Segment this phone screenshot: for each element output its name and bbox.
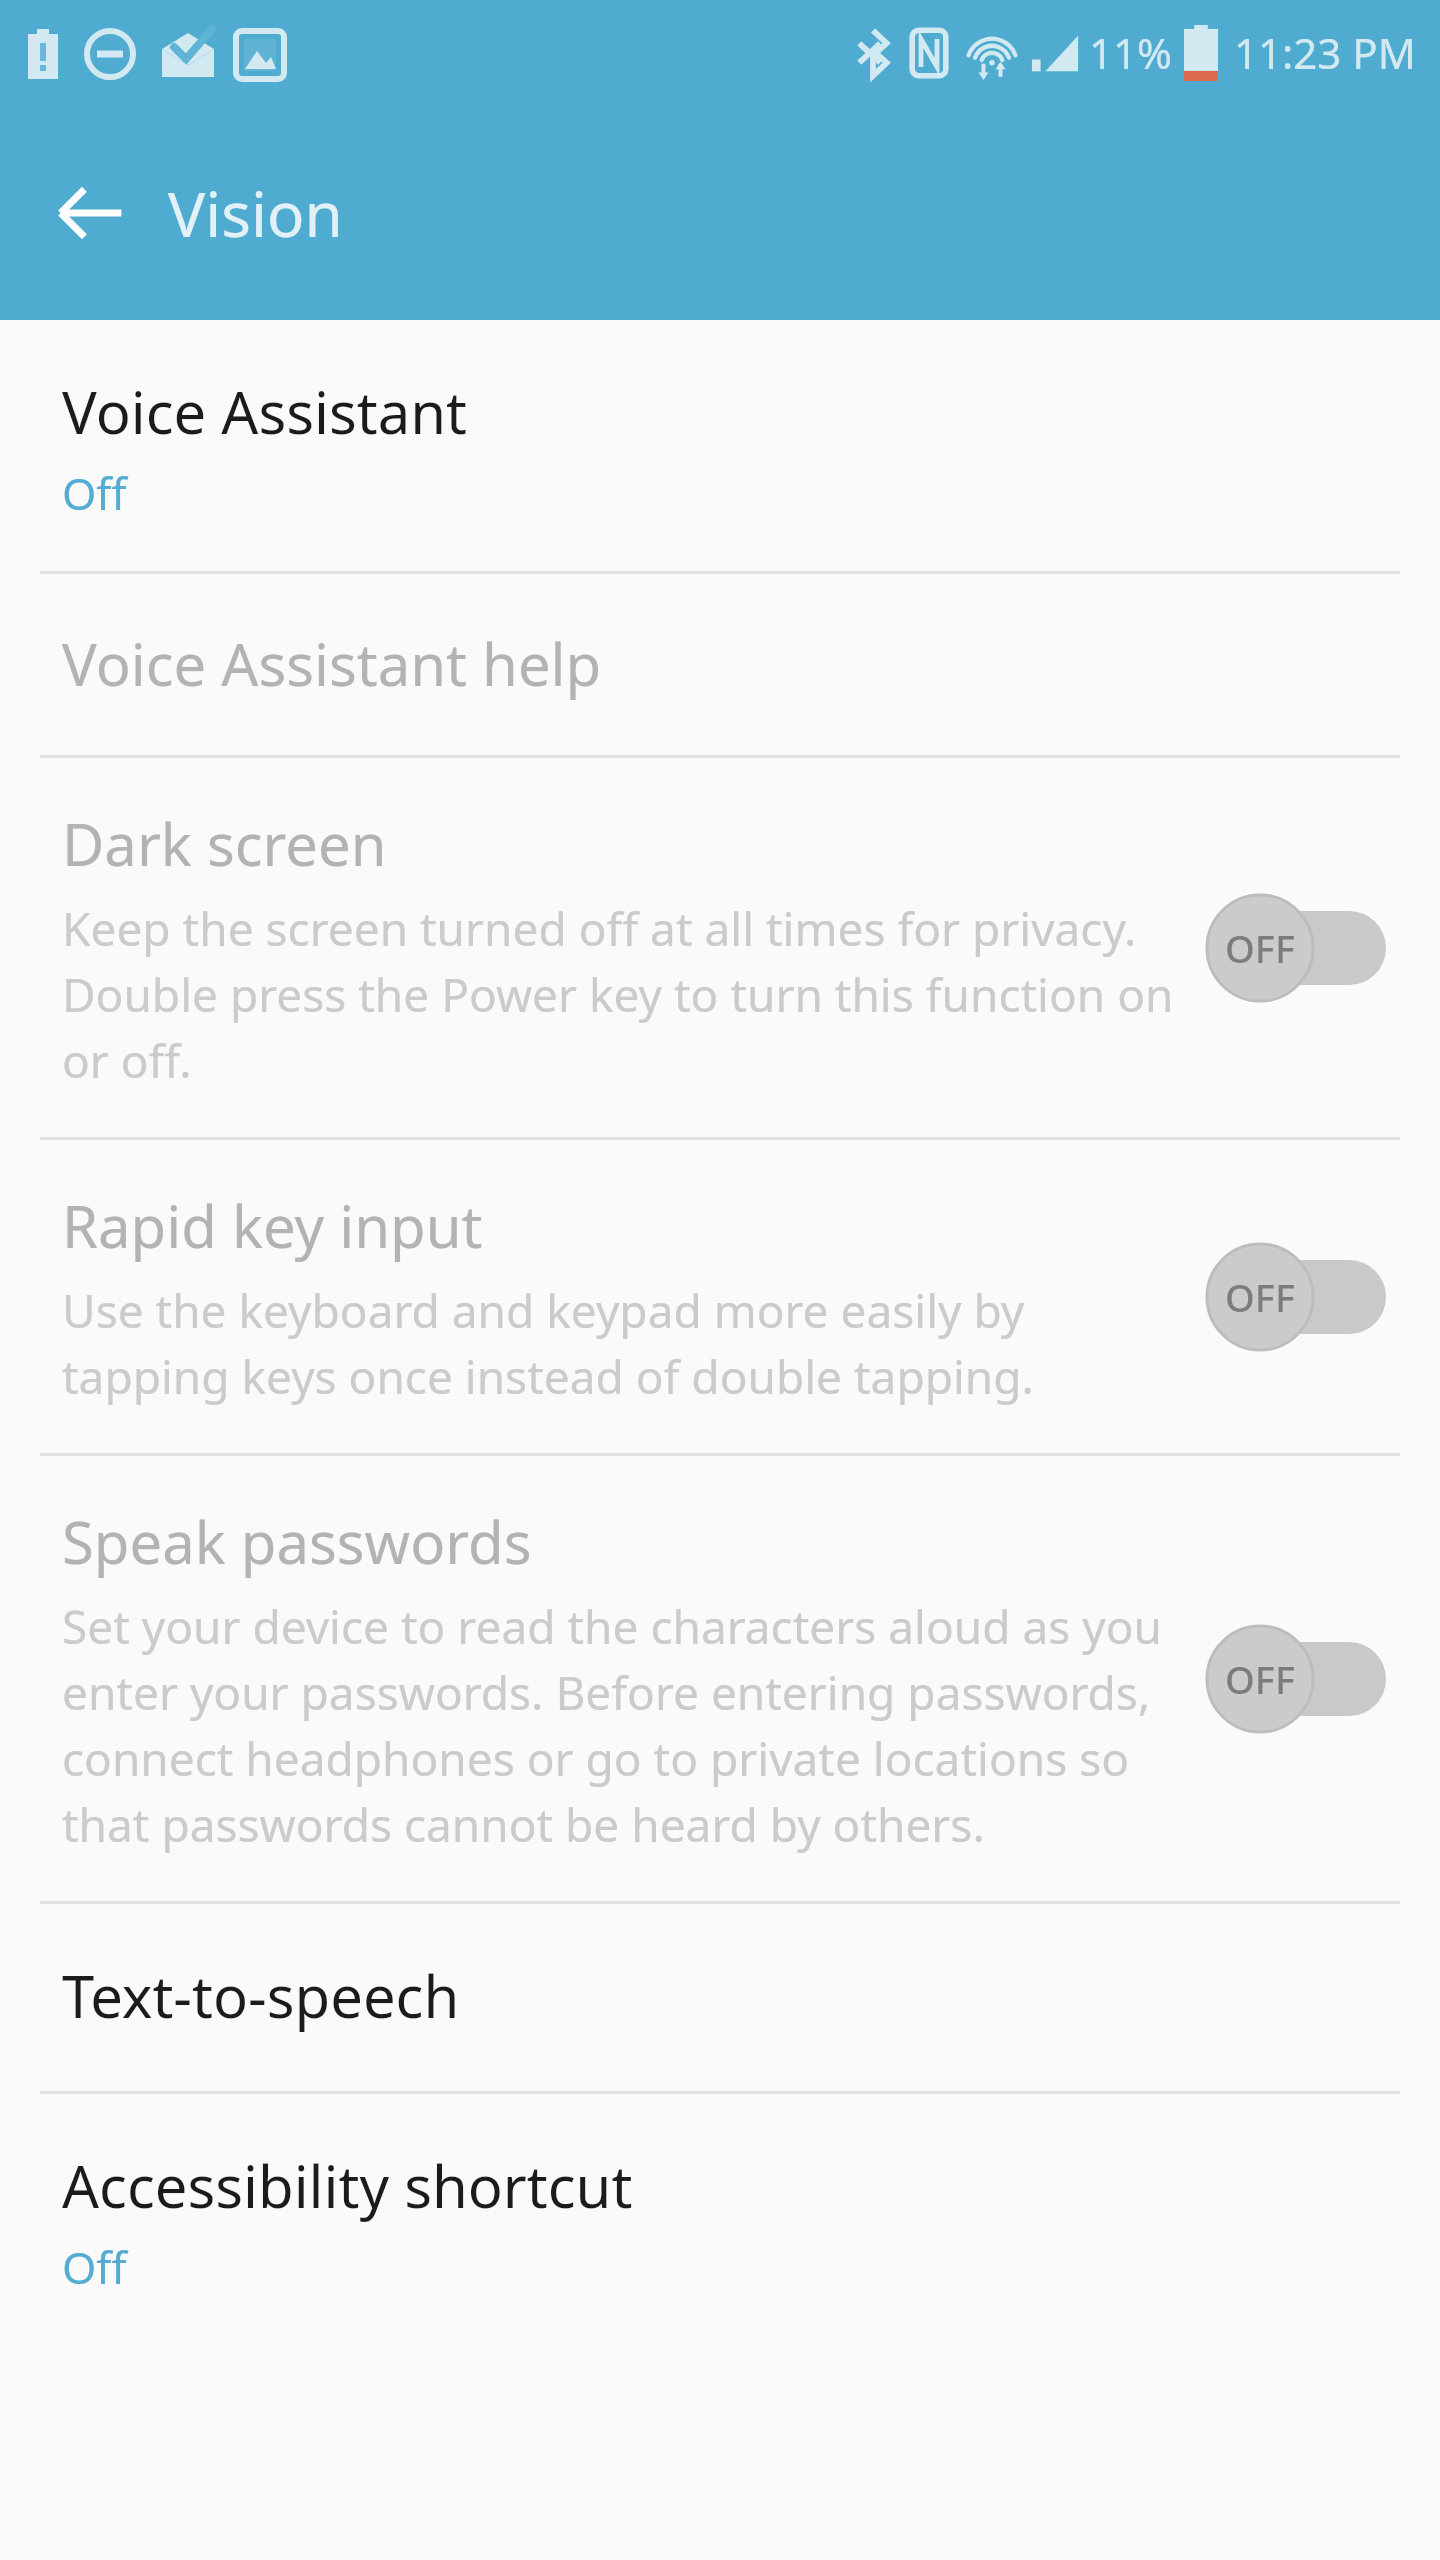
staticText: Keep the screen turned off at all times … — [62, 897, 1176, 1091]
button[interactable]: Voice Assistant help — [0, 574, 1440, 755]
staticText: OFF — [1214, 922, 1306, 974]
staticText: Rapid key input — [62, 1186, 483, 1265]
staticText: Voice Assistant help — [62, 624, 602, 703]
staticText: 11% — [1089, 24, 1172, 81]
staticText: Set your device to read the characters a… — [62, 1595, 1176, 1855]
button[interactable]: Navigate up — [36, 158, 146, 268]
staticText: Voice Assistant — [62, 372, 467, 451]
button[interactable]: Toggle, off — [1204, 1242, 1394, 1352]
staticText: Vision — [168, 171, 343, 255]
staticText: Use the keyboard and keypad more easily … — [62, 1279, 1176, 1407]
staticText: Off — [62, 2237, 127, 2297]
staticText: Off — [62, 463, 127, 523]
staticText: OFF — [1214, 1271, 1306, 1323]
staticText: Speak passwords — [62, 1502, 532, 1581]
button[interactable]: Text-to-speech — [0, 1904, 1440, 2091]
staticText: Dark screen — [62, 804, 387, 883]
button[interactable]: Speak passwords — [0, 1456, 1440, 1901]
staticText: Text-to-speech — [62, 1956, 460, 2035]
button[interactable]: Rapid key input — [0, 1140, 1440, 1453]
staticText: 11:23 PM — [1234, 24, 1416, 81]
button[interactable]: Toggle, off — [1204, 893, 1394, 1003]
button[interactable]: Voice Assistant — [0, 320, 1440, 571]
button[interactable]: Accessibility shortcut — [0, 2094, 1440, 2345]
button[interactable]: Dark screen — [0, 758, 1440, 1137]
staticText: OFF — [1214, 1653, 1306, 1705]
staticText: Accessibility shortcut — [62, 2146, 633, 2225]
button[interactable]: Toggle, off — [1204, 1624, 1394, 1734]
